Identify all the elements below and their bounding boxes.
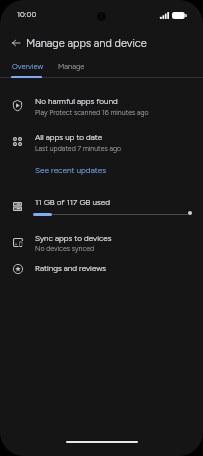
- button[interactable]: Ratings and reviews: [0, 258, 203, 282]
- button[interactable]: No harmful apps found: [0, 89, 203, 124]
- staticText: Ratings and reviews: [35, 263, 107, 273]
- staticText: Play Protect scanned 16 minutes ago: [35, 108, 149, 116]
- button[interactable]: 11 GB of 117 GB used: [0, 190, 203, 222]
- staticText: 10:00: [17, 10, 37, 19]
- staticText: Manage apps and device: [26, 37, 147, 50]
- staticText: Last updated 7 minutes ago: [35, 144, 122, 152]
- staticText: Manage: [58, 62, 85, 71]
- staticText: No harmful apps found: [35, 96, 118, 106]
- button[interactable]: Sync apps to devices: [0, 226, 203, 258]
- button[interactable]: See recent updates: [31, 162, 111, 178]
- button[interactable]: All apps up to date: [0, 126, 203, 161]
- staticText: 11 GB of 117 GB used: [35, 197, 110, 207]
- staticText: Sync apps to devices: [35, 233, 112, 243]
- staticText: See recent updates: [35, 165, 107, 175]
- button[interactable]: Back: [6, 33, 25, 52]
- staticText: All apps up to date: [35, 132, 103, 142]
- button[interactable]: Manage: [50, 60, 92, 79]
- button[interactable]: Overview: [4, 60, 52, 79]
- staticText: No devices synced: [35, 244, 95, 252]
- staticText: Overview: [12, 62, 44, 71]
